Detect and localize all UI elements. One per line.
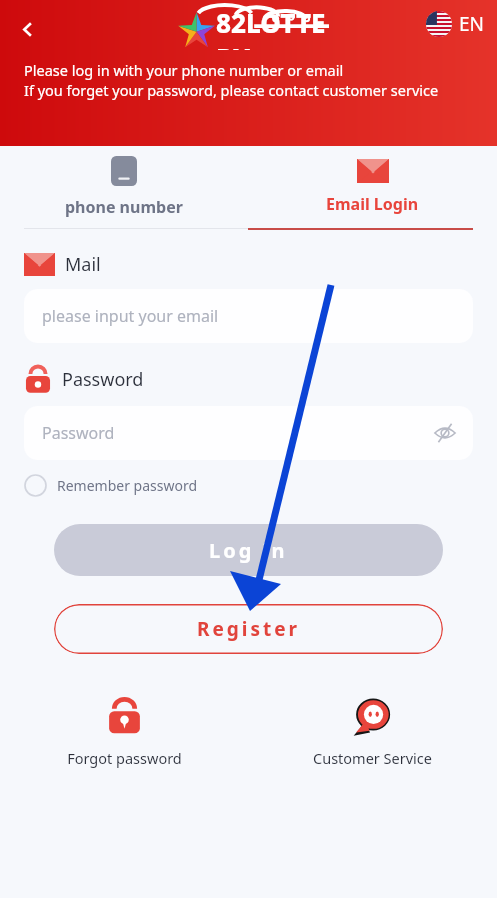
button[interactable]: Register [54,604,443,654]
staticText: please input your email [42,305,219,327]
staticText: Customer Service [313,748,432,768]
staticText: Register [197,616,301,642]
staticText: phone number [65,196,183,218]
staticText: Password [62,367,144,392]
button[interactable]: Password [24,406,473,460]
button[interactable]: Remember password [24,474,198,497]
staticText: If you forget your password, please cont… [24,80,439,100]
staticText: Remember password [57,476,198,495]
staticText: Log in [209,537,288,564]
button[interactable]: Show password [431,419,459,447]
button[interactable]: Forgot password [0,696,248,768]
staticText: Email Login [326,193,419,215]
button[interactable]: Email Login [248,146,497,228]
staticText: EN [459,11,485,37]
staticText: Forgot password [67,748,182,768]
staticText: Password [42,422,115,444]
button[interactable]: Back [6,8,48,50]
staticText: Please log in with your phone number or … [24,60,344,80]
staticText: 82LOTTERY [216,5,335,50]
button[interactable]: Language EN [426,11,485,37]
button[interactable]: please input your email [24,289,473,343]
button[interactable]: Log in [54,524,443,576]
button[interactable]: phone number [0,146,248,228]
staticText: Mail [65,252,101,277]
button[interactable]: Customer Service [248,696,497,768]
